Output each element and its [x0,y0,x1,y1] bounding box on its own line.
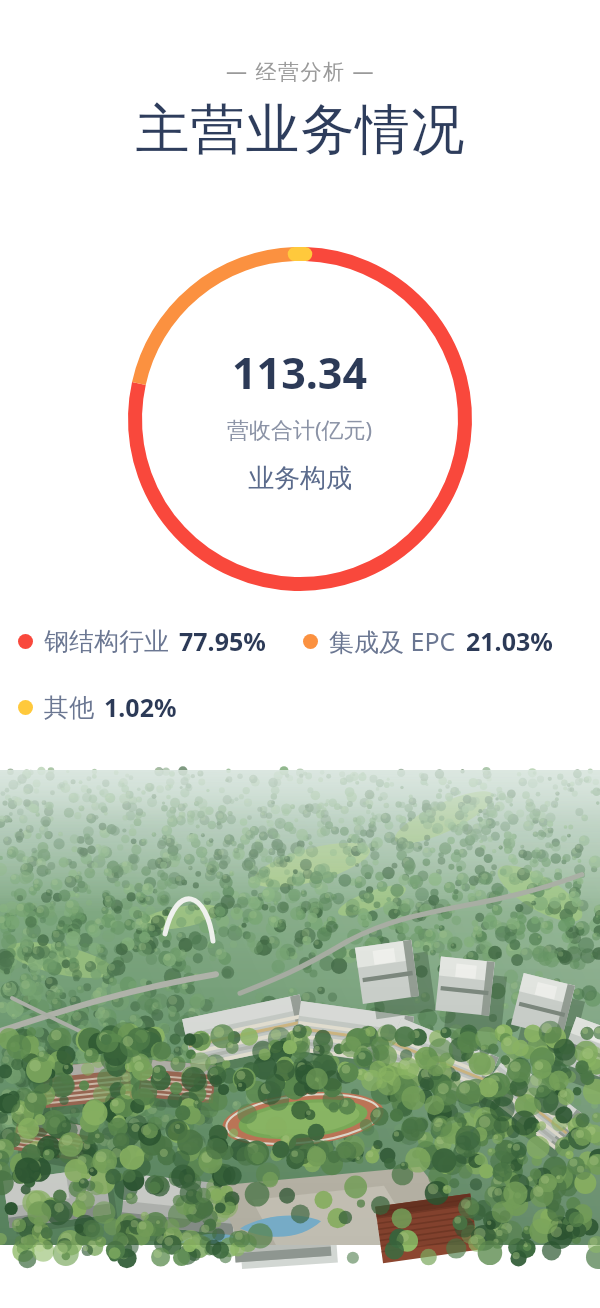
staticText: 营收合计(亿元) [227,414,373,444]
button[interactable]: 其他 [0,685,285,729]
staticText: 21.03% [466,624,553,658]
staticText: — 经营分析 — [226,57,375,86]
staticText: 77.95% [179,624,266,658]
button[interactable]: 业务构成环形图 [128,247,472,591]
staticText: 钢结构行业 [44,626,169,657]
button[interactable]: 钢结构行业 [0,619,285,663]
staticText: 集成及 EPC [329,624,456,658]
staticText: 主营业务情况 [135,96,465,164]
button[interactable]: 集成及 EPC [285,619,570,663]
staticText: 其他 [44,692,94,723]
staticText: 113.34 [232,343,368,402]
staticText: 业务构成 [248,462,352,495]
staticText: 1.02% [104,690,177,724]
